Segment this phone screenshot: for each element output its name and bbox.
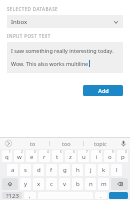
staticText: l <box>116 166 118 174</box>
staticText: Inbox <box>11 18 113 26</box>
staticText: a <box>11 166 15 174</box>
staticText: SELECTED DATABASE <box>7 6 58 12</box>
staticText: x <box>37 180 41 188</box>
staticText: m <box>101 180 107 188</box>
staticText: p <box>121 153 125 161</box>
staticText: 4 <box>47 150 49 154</box>
button[interactable]: 1 <box>2 150 12 162</box>
staticText: z <box>69 153 72 161</box>
button[interactable]: 0 <box>117 150 128 162</box>
button[interactable]: to <box>16 138 49 149</box>
button[interactable]: 8 <box>91 150 102 162</box>
staticText: u <box>82 153 86 161</box>
staticText: g <box>63 166 67 174</box>
button[interactable]: Voice input <box>117 138 130 149</box>
button[interactable]: ?123 <box>2 192 22 199</box>
staticText: c <box>50 180 53 188</box>
staticText: 1 <box>9 150 11 154</box>
staticText: n <box>89 180 93 188</box>
button[interactable]: . <box>95 192 107 199</box>
button[interactable]: y <box>20 178 31 190</box>
staticText: y <box>24 180 28 188</box>
staticText: j <box>90 166 92 174</box>
button[interactable]: m <box>98 178 109 190</box>
staticText: o <box>108 153 112 161</box>
staticText: ?123 <box>6 192 19 199</box>
staticText: b <box>76 180 80 188</box>
staticText: q <box>5 153 9 161</box>
staticText: r <box>43 153 46 161</box>
staticText: INPUT POST TEXT <box>7 33 51 39</box>
staticText: s <box>24 166 27 174</box>
button[interactable]: s <box>20 164 31 176</box>
staticText: to <box>30 140 36 147</box>
button[interactable]: h <box>72 164 83 176</box>
staticText: 0 <box>125 150 127 154</box>
button[interactable]: d <box>33 164 44 176</box>
staticText: w <box>17 153 22 161</box>
staticText: 8 <box>99 150 101 154</box>
button[interactable]: Expand suggestions <box>0 138 16 149</box>
staticText: e <box>30 153 34 161</box>
button[interactable]: x <box>33 178 44 190</box>
other: Expand database list <box>113 19 119 25</box>
staticText: Wow. This also works multiline <box>11 60 89 67</box>
staticText: 9 <box>112 150 114 154</box>
button[interactable]: 7 <box>78 150 89 162</box>
button[interactable]: 4 <box>39 150 50 162</box>
button[interactable]: Backspace <box>111 178 128 190</box>
button[interactable]: j <box>85 164 96 176</box>
button[interactable]: I saw something really interesting today… <box>7 42 123 73</box>
button[interactable]: f <box>46 164 57 176</box>
staticText: Add <box>98 87 109 94</box>
staticText: 6 <box>73 150 75 154</box>
staticText: I saw something really interesting today… <box>11 47 114 54</box>
button[interactable]: l <box>111 164 122 176</box>
button[interactable]: Inbox <box>7 15 123 28</box>
button[interactable]: b <box>72 178 83 190</box>
staticText: f <box>50 166 53 174</box>
staticText: , <box>29 192 31 199</box>
button[interactable]: 3 <box>26 150 37 162</box>
button[interactable]: , <box>24 192 36 199</box>
staticText: t <box>56 153 59 161</box>
staticText: topic <box>94 140 107 147</box>
button[interactable]: v <box>59 178 70 190</box>
button[interactable]: c <box>46 178 57 190</box>
staticText: k <box>102 166 106 174</box>
button[interactable]: 6 <box>65 150 76 162</box>
button[interactable]: k <box>98 164 109 176</box>
staticText: 2 <box>21 150 23 154</box>
staticText: d <box>37 166 41 174</box>
button[interactable]: 9 <box>104 150 115 162</box>
button[interactable]: 5 <box>52 150 63 162</box>
staticText: i <box>96 153 98 161</box>
button[interactable]: g <box>59 164 70 176</box>
staticText: h <box>76 166 80 174</box>
button[interactable]: n <box>85 178 96 190</box>
staticText: 3 <box>34 150 36 154</box>
button[interactable]: Shift <box>2 178 18 190</box>
staticText: 7 <box>86 150 88 154</box>
button[interactable]: 2 <box>14 150 24 162</box>
button[interactable]: topic <box>84 138 117 149</box>
button[interactable]: Add <box>83 85 123 96</box>
staticText: 5 <box>60 150 62 154</box>
button[interactable] <box>109 192 128 199</box>
staticText: v <box>63 180 67 188</box>
staticText: too <box>62 140 71 147</box>
button[interactable]: a <box>7 164 18 176</box>
button[interactable]: too <box>50 138 83 149</box>
staticText: . <box>100 192 102 199</box>
